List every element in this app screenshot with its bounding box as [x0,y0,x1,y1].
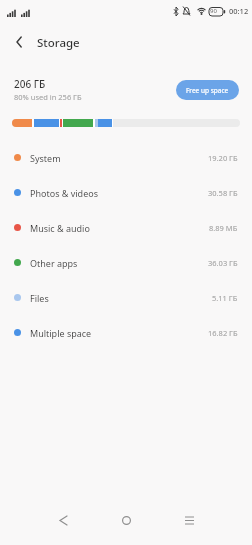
staticText: Photos & videos [30,187,98,199]
staticText: Files [30,292,49,304]
button[interactable]: Photos & videos [0,175,252,210]
button[interactable] [8,30,32,54]
button[interactable]: System [0,140,252,175]
staticText: Free up space [186,86,229,95]
staticText: 19.20 ГБ [208,153,238,163]
button[interactable]: Free up space [176,80,239,100]
button[interactable] [32,500,95,540]
button[interactable] [95,500,158,540]
staticText: 90 [210,7,217,15]
button[interactable]: Music & audio [0,210,252,245]
staticText: 16.82 ГБ [208,328,238,338]
staticText: 206 ГБ [14,77,46,91]
staticText: 36.03 ГБ [208,258,238,268]
staticText: 8.89 МБ [209,223,238,233]
staticText: Music & audio [30,222,90,234]
button[interactable]: Other apps [0,245,252,280]
staticText: 30.58 ГБ [208,188,238,198]
button[interactable]: Files [0,280,252,315]
staticText: Other apps [30,257,78,269]
staticText: System [30,152,61,164]
staticText: Storage [37,35,80,51]
staticText: Multiple space [30,327,92,339]
button[interactable]: Multiple space [0,315,252,350]
staticText: 00:12 [229,6,249,16]
staticText: 5.11 ГБ [212,293,238,303]
button[interactable] [158,500,221,540]
staticText: 80% used in 256 ГБ [14,92,82,102]
